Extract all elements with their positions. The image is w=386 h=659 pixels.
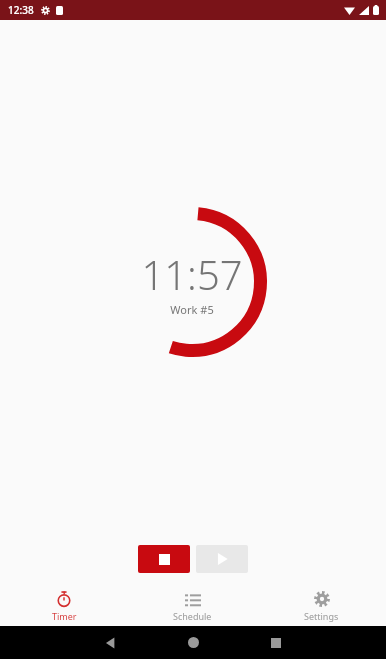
staticText: Timer xyxy=(52,610,77,622)
button[interactable]: Back xyxy=(105,637,117,649)
staticText: Work #5 xyxy=(170,302,214,317)
staticText: Settings xyxy=(304,610,339,622)
button[interactable]: Schedule xyxy=(128,586,257,626)
staticText: Schedule xyxy=(173,610,212,622)
staticText: 12:38 xyxy=(8,3,34,17)
button[interactable]: Timer xyxy=(0,586,128,626)
button[interactable]: Start timer xyxy=(196,545,248,573)
staticText: 11:57 xyxy=(141,247,243,301)
button[interactable]: Stop timer xyxy=(138,545,190,573)
button[interactable]: Home xyxy=(188,637,199,648)
button[interactable]: Settings xyxy=(257,586,386,626)
